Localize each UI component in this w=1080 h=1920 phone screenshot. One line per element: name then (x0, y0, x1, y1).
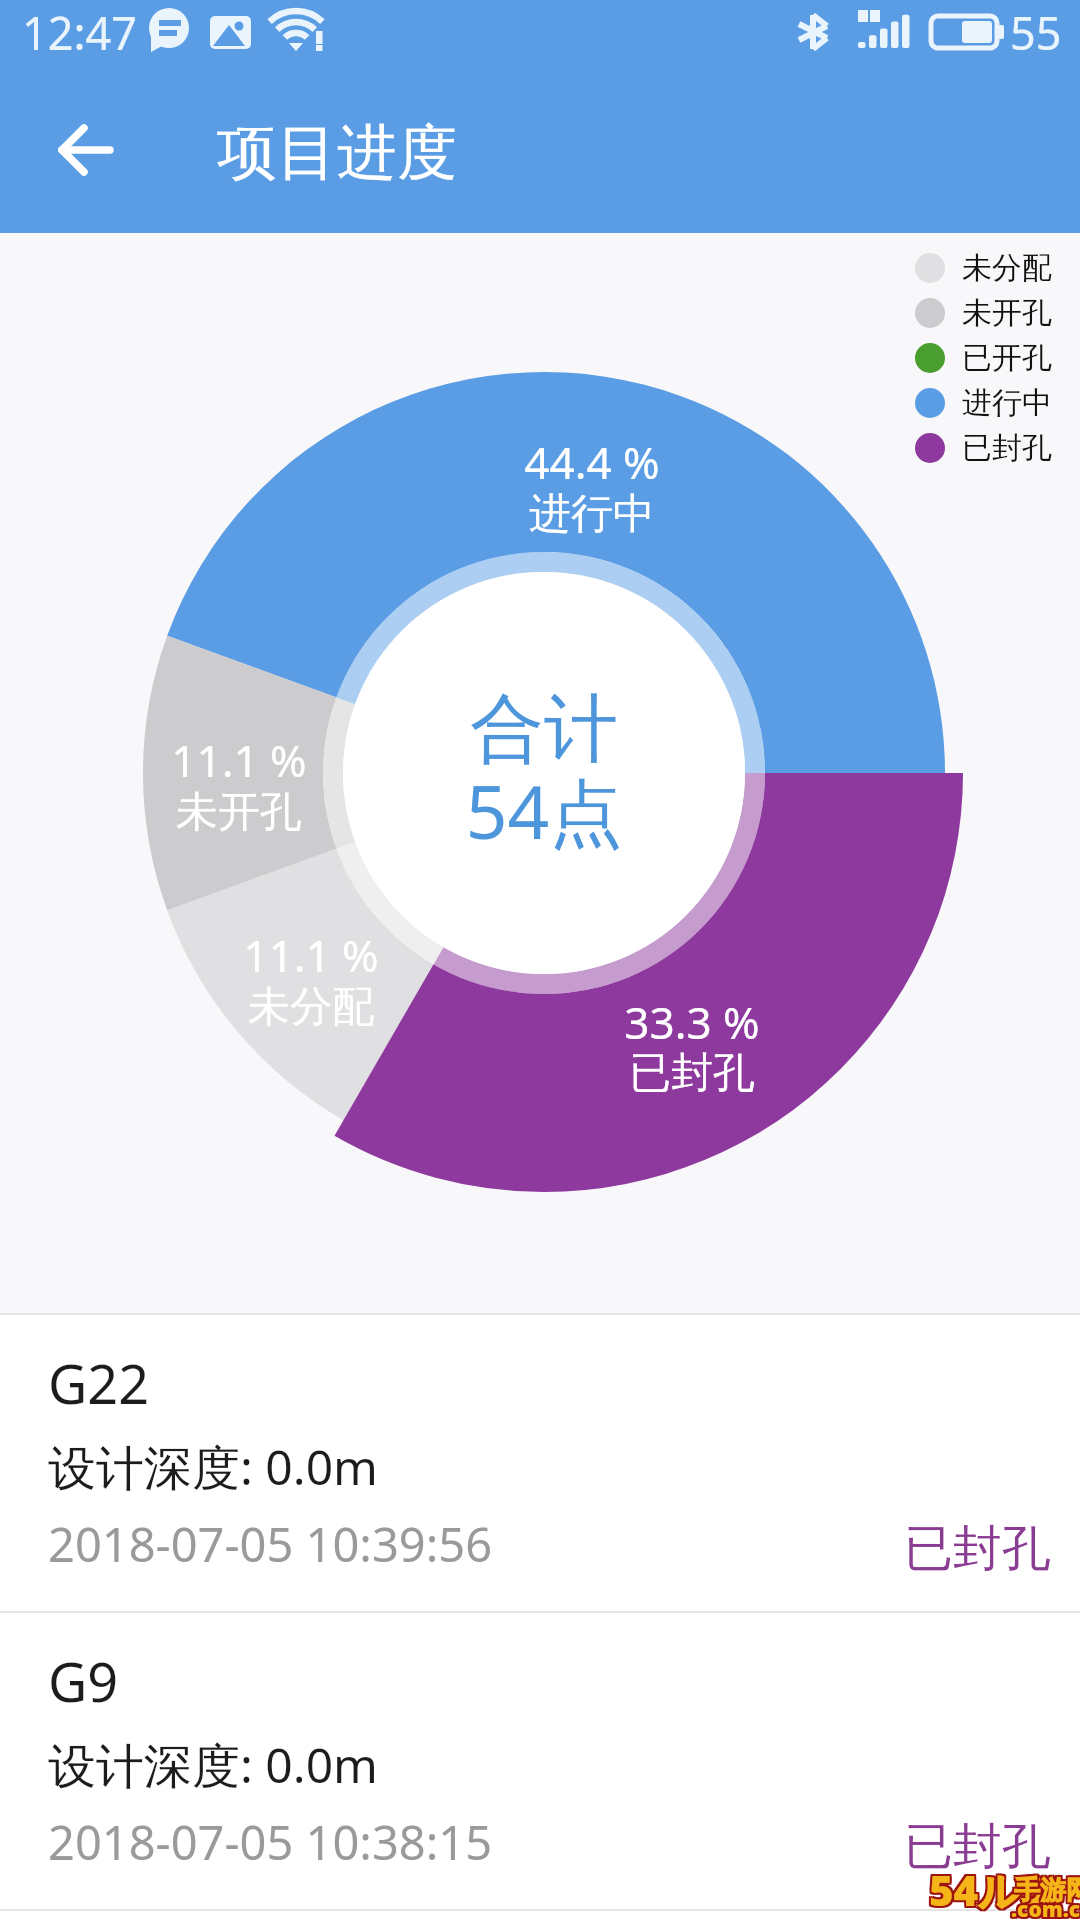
staticText: .com.cn (1013, 1897, 1080, 1920)
staticText: 54ル9 (929, 1861, 1046, 1918)
staticText: 已开孔 (962, 339, 1052, 377)
staticText: 未开孔 (9, 786, 469, 839)
staticText: .com.cn (1011, 1893, 1080, 1920)
button[interactable]: G9 (0, 1613, 1080, 1909)
staticText: 54ル9 (929, 1859, 1046, 1916)
staticText: 设计深度: 0.0m (48, 1732, 379, 1798)
staticText: 54ル9 (927, 1861, 1044, 1918)
staticText: 54ル9 (929, 1863, 1046, 1920)
staticText: 44.4 % (362, 432, 822, 492)
staticText: 手游网 (1016, 1876, 1080, 1909)
staticText: G9 (48, 1644, 119, 1718)
staticText: 55 (1010, 2, 1062, 63)
staticText: 手游网 (1012, 1872, 1080, 1905)
staticText: 54ル9 (927, 1859, 1044, 1916)
staticText: 未分配 (962, 249, 1052, 287)
staticText: 手游网 (1014, 1876, 1080, 1909)
staticText: 已封孔 (462, 1047, 922, 1100)
staticText: 手游网 (1012, 1876, 1080, 1909)
staticText: 54ル9 (931, 1863, 1048, 1920)
staticText: .com.cn (1009, 1895, 1080, 1920)
staticText: 设计深度: 0.0m (48, 1434, 379, 1500)
staticText: 已封孔 (904, 1518, 1051, 1580)
staticText: 进行中 (962, 384, 1052, 422)
staticText: 手游网 (1016, 1874, 1080, 1907)
staticText: 未分配 (81, 981, 541, 1034)
staticText: 手游网 (1014, 1874, 1080, 1907)
staticText: 手游网 (1016, 1872, 1080, 1905)
staticText: G22 (48, 1346, 150, 1420)
staticText: 项目进度 (217, 115, 457, 191)
button[interactable]: G22 (0, 1315, 1080, 1611)
staticText: 手游网 (1012, 1874, 1080, 1907)
staticText: .com.cn (1011, 1895, 1080, 1920)
staticText: 54点 (314, 761, 774, 861)
staticText: 11.1 % (9, 730, 469, 790)
staticText: 54ル9 (931, 1861, 1048, 1918)
staticText: .com.cn (1011, 1897, 1080, 1920)
button[interactable]: Back (36, 102, 132, 198)
staticText: 合计 (314, 683, 774, 776)
staticText: .com.cn (1013, 1893, 1080, 1920)
staticText: 已封孔 (904, 1816, 1051, 1878)
staticText: 2018-07-05 10:38:15 (48, 1810, 493, 1874)
staticText: 12:47 (22, 2, 138, 63)
staticText: 2018-07-05 10:39:56 (48, 1512, 493, 1576)
staticText: 手游网 (1014, 1872, 1080, 1905)
staticText: 已封孔 (962, 429, 1052, 467)
staticText: .com.cn (1009, 1893, 1080, 1920)
staticText: 进行中 (362, 488, 822, 541)
staticText: 54ル9 (931, 1859, 1048, 1916)
staticText: .com.cn (1009, 1897, 1080, 1920)
staticText: 未开孔 (962, 294, 1052, 332)
staticText: 33.3 % (462, 992, 922, 1052)
staticText: .com.cn (1013, 1895, 1080, 1920)
staticText: 11.1 % (81, 925, 541, 985)
staticText: 54ル9 (927, 1863, 1044, 1920)
